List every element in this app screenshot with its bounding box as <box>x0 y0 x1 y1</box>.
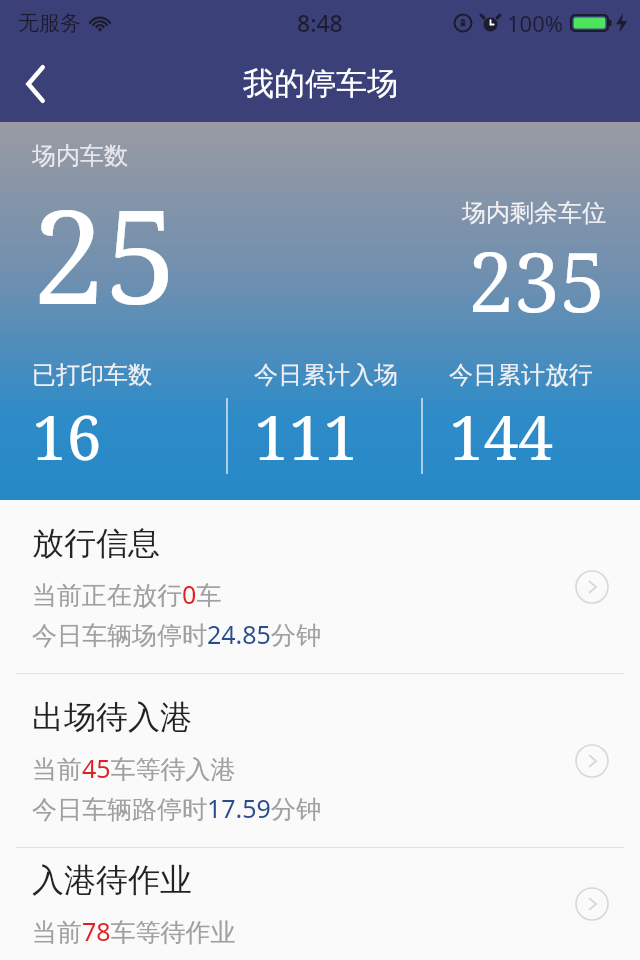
staticText: 235 <box>468 224 606 336</box>
button[interactable]: Back <box>0 48 72 120</box>
staticText: 16 <box>32 394 102 478</box>
staticText: 8:48 <box>297 7 343 38</box>
staticText: 当前45车等待入港 <box>32 751 236 785</box>
staticText: 今日车辆场停时24.85分钟 <box>32 617 321 651</box>
staticText: 当前正在放行0车 <box>32 577 222 611</box>
staticText: 场内车数 <box>32 141 128 171</box>
staticText: 出场待入港 <box>32 697 192 737</box>
staticText: 场内剩余车位 <box>462 198 606 228</box>
staticText: 144 <box>449 394 553 478</box>
staticText: 今日累计入场 <box>254 360 398 390</box>
staticText: 今日车辆路停时17.59分钟 <box>32 791 321 825</box>
button[interactable]: 放行信息 <box>0 500 640 673</box>
staticText: 无服务 <box>18 10 81 36</box>
staticText: 111 <box>254 394 358 478</box>
staticText: 我的停车场 <box>243 64 398 103</box>
staticText: 已打印车数 <box>32 360 152 390</box>
button[interactable]: 出场待入港 <box>0 674 640 847</box>
button[interactable]: 入港待作业 <box>0 848 640 960</box>
staticText: 100% <box>507 8 564 38</box>
staticText: 入港待作业 <box>32 860 192 900</box>
staticText: 放行信息 <box>32 523 160 563</box>
staticText: 当前78车等待作业 <box>32 914 236 948</box>
staticText: 今日累计放行 <box>449 360 593 390</box>
staticText: 25 <box>32 165 178 342</box>
